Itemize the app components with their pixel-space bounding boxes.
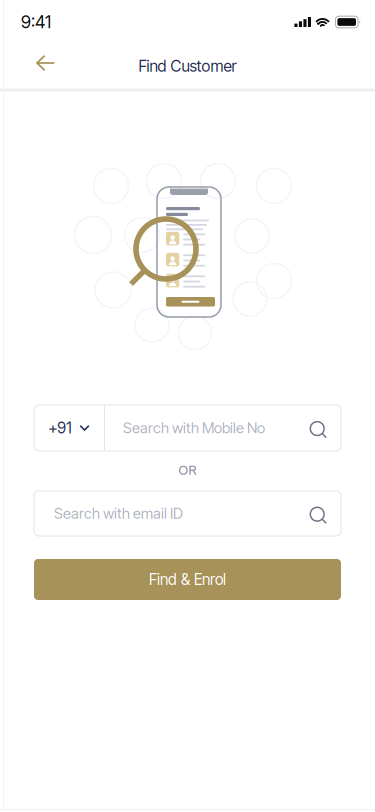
staticText: Search with email ID — [54, 505, 183, 522]
staticText: OR — [178, 462, 196, 478]
staticText: Search with Mobile No — [123, 419, 265, 437]
staticText: Find & Enrol — [149, 570, 226, 589]
button[interactable]: Select country code, currently +91 — [34, 405, 104, 451]
staticText: 9:41 — [21, 11, 51, 32]
staticText: +91 — [48, 419, 71, 437]
button[interactable]: Find & Enrol — [34, 559, 341, 600]
button[interactable]: Search with email ID — [34, 491, 341, 536]
button[interactable]: Back — [23, 42, 68, 84]
staticText: Find Customer — [138, 56, 236, 75]
button[interactable]: Search with Mobile No — [105, 405, 341, 451]
